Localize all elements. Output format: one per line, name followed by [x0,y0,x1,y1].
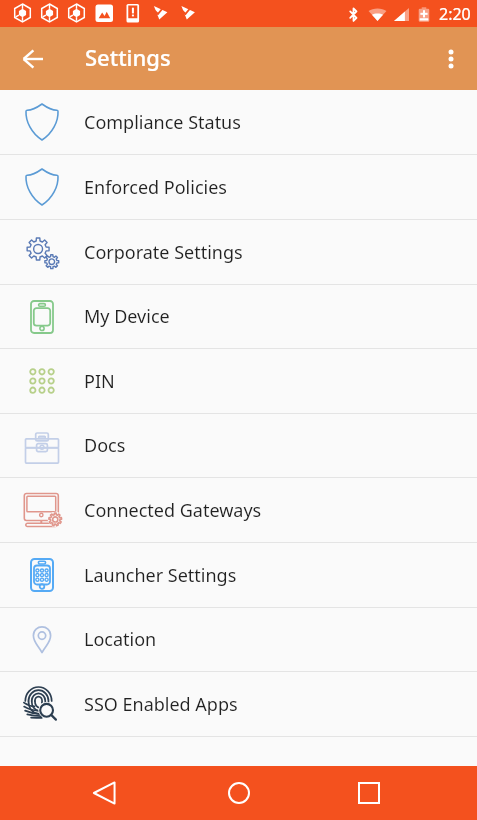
button[interactable]: Compliance Status [0,90,477,154]
button[interactable]: SSO Enabled Apps [0,672,477,736]
staticText: My Device [84,304,170,329]
staticText: Docs [84,433,126,458]
staticText: Compliance Status [84,110,241,135]
button[interactable]: Connected Gateways [0,478,477,542]
button[interactable]: Back [13,39,53,79]
button[interactable]: Corporate Settings [0,220,477,284]
staticText: PIN [84,369,115,394]
button[interactable]: Enforced Policies [0,155,477,219]
button[interactable]: Docs [0,414,477,477]
staticText: Location [84,627,157,652]
button[interactable]: Launcher Settings [0,543,477,607]
staticText: Enforced Policies [84,175,227,200]
staticText: Connected Gateways [84,498,262,523]
staticText: Launcher Settings [84,563,237,588]
staticText: SSO Enabled Apps [84,692,238,717]
button[interactable]: Back [80,769,128,817]
button[interactable]: Recent apps [345,769,393,817]
button[interactable]: Location [0,608,477,671]
button[interactable]: Home [215,769,263,817]
staticText: Corporate Settings [84,240,243,265]
staticText: 2:20 [439,3,471,25]
staticText: Settings [85,42,171,72]
button[interactable]: My Device [0,285,477,348]
button[interactable]: PIN [0,349,477,413]
button[interactable]: More options [431,39,471,79]
